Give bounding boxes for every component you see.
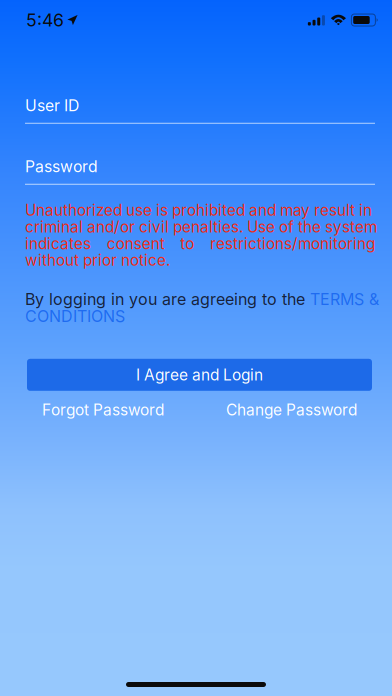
staticText: to — [180, 234, 194, 253]
staticText: Password — [25, 157, 98, 176]
staticText: CONDITIONS — [25, 306, 125, 326]
button[interactable]: Forgot Password — [25, 399, 181, 421]
staticText: indicates — [25, 234, 91, 253]
staticText: User ID — [25, 96, 79, 115]
button[interactable]: Change Password — [208, 399, 375, 421]
button[interactable]: I Agree and Login — [27, 359, 372, 391]
staticText: Unauthorized use is prohibited and may r… — [25, 201, 372, 220]
staticText: Change Password — [226, 400, 357, 419]
staticText: 5:46 — [26, 9, 64, 31]
staticText: consent — [107, 234, 165, 253]
staticText: By logging in you are agreeing to the TE… — [25, 289, 379, 309]
staticText: I Agree and Login — [136, 365, 263, 384]
staticText: Forgot Password — [42, 400, 164, 419]
staticText: restrictions/monitoring — [210, 234, 375, 253]
staticText: criminal and/or civil penalties. Use of … — [25, 218, 377, 236]
staticText: without prior notice. — [25, 251, 170, 270]
